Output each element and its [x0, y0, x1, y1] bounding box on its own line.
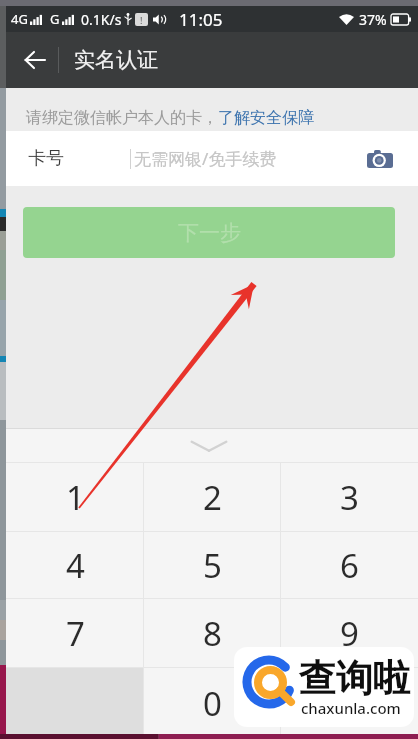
- staticText: 5: [203, 543, 222, 588]
- staticText: 了解安全保障: [218, 108, 314, 128]
- button[interactable]: 3: [281, 463, 418, 531]
- staticText: 卡号: [28, 147, 64, 170]
- staticText: 查询啦: [299, 655, 410, 702]
- staticText: 4: [66, 543, 85, 588]
- staticText: 7: [66, 611, 85, 656]
- button[interactable]: 1: [6, 463, 144, 531]
- button[interactable]: 0: [144, 668, 281, 739]
- staticText: 0.1K/s: [81, 10, 122, 29]
- staticText: 下一步: [178, 220, 241, 246]
- staticText: 37%: [359, 10, 387, 29]
- button[interactable]: 2: [144, 463, 281, 531]
- staticText: 请绑定微信帐户本人的卡，: [26, 108, 218, 128]
- staticText: 实名认证: [74, 47, 158, 73]
- staticText: 无需网银/免手续费: [134, 147, 277, 170]
- staticText: 2: [203, 475, 222, 520]
- staticText: G: [50, 10, 60, 28]
- button[interactable]: 了解安全保障: [218, 108, 314, 128]
- button[interactable]: [6, 668, 144, 739]
- button[interactable]: 8: [144, 599, 281, 667]
- button[interactable]: [281, 668, 418, 739]
- button[interactable]: 7: [6, 599, 144, 667]
- button[interactable]: Hide keyboard: [0, 429, 418, 462]
- staticText: 1: [66, 475, 85, 520]
- staticText: 4G: [11, 10, 28, 28]
- button[interactable]: 下一步: [23, 207, 395, 258]
- button[interactable]: 5: [144, 532, 281, 598]
- button[interactable]: 9: [281, 599, 418, 667]
- staticText: 0: [203, 681, 222, 726]
- button[interactable]: 6: [281, 532, 418, 598]
- staticText: 9: [340, 611, 359, 656]
- button[interactable]: Scan card: [362, 141, 398, 177]
- staticText: 11:05: [179, 8, 223, 31]
- staticText: 6: [340, 543, 359, 588]
- staticText: !: [140, 14, 143, 26]
- button[interactable]: Back: [0, 32, 58, 88]
- button[interactable]: 4: [6, 532, 144, 598]
- staticText: chaxunla.com: [301, 698, 401, 718]
- staticText: 3: [340, 475, 359, 520]
- staticText: 8: [203, 611, 222, 656]
